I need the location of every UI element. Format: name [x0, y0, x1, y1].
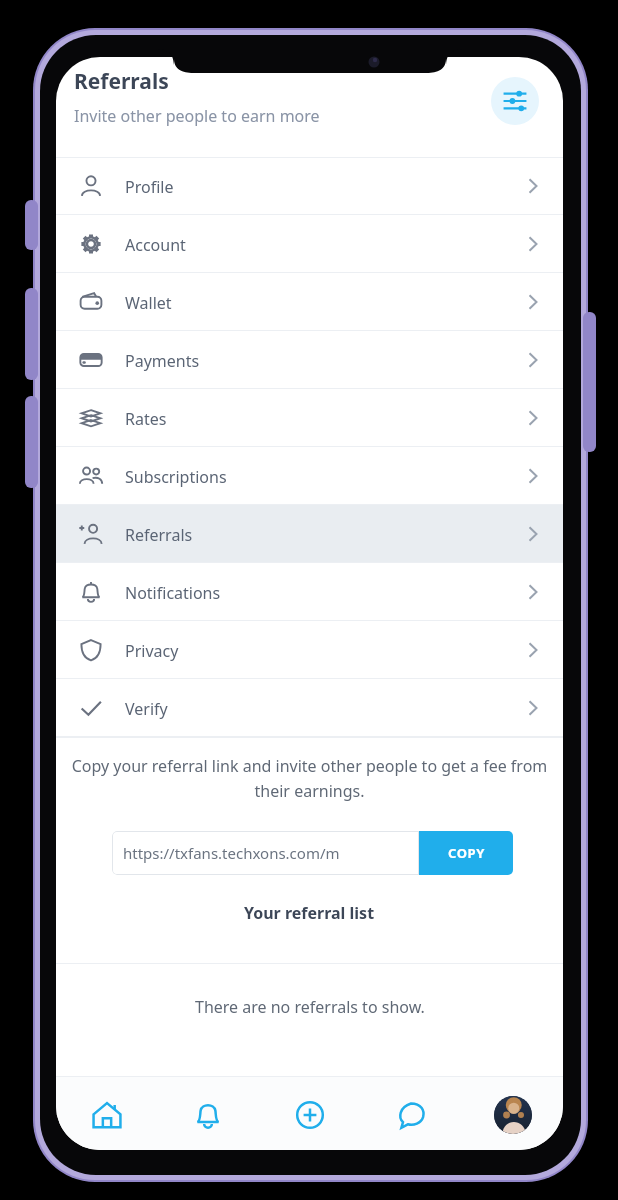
button[interactable]: Profile [56, 157, 563, 215]
button[interactable]: Referrals [56, 505, 563, 563]
staticText: Payments [125, 350, 200, 372]
staticText: Subscriptions [125, 466, 227, 488]
staticText: Referrals [74, 67, 169, 96]
staticText: Copy your referral link and invite other… [68, 755, 551, 801]
button[interactable]: https://txfans.techxons.com/m [112, 831, 419, 875]
staticText: Privacy [125, 640, 179, 662]
button[interactable]: Home [56, 1082, 157, 1148]
button[interactable]: Account [56, 215, 563, 273]
button[interactable]: Profile [462, 1082, 563, 1148]
staticText: https://txfans.techxons.com/m [123, 843, 340, 863]
button[interactable]: Filter settings [491, 77, 539, 125]
button[interactable]: Subscriptions [56, 447, 563, 505]
button[interactable]: Create [259, 1082, 360, 1148]
staticText: Invite other people to earn more [74, 105, 320, 127]
button[interactable]: Notifications [157, 1082, 258, 1148]
button[interactable]: Payments [56, 331, 563, 389]
button[interactable]: Verify [56, 679, 563, 737]
staticText: There are no referrals to show. [195, 996, 425, 1018]
button[interactable]: Privacy [56, 621, 563, 679]
button[interactable]: Messages [360, 1082, 461, 1148]
button[interactable]: Rates [56, 389, 563, 447]
staticText: Profile [125, 176, 174, 198]
button[interactable]: Notifications [56, 563, 563, 621]
staticText: Rates [125, 408, 167, 430]
staticText: Referrals [125, 524, 193, 546]
button[interactable]: Wallet [56, 273, 563, 331]
staticText: Wallet [125, 292, 172, 314]
staticText: Verify [125, 698, 168, 720]
button[interactable]: COPY [419, 831, 513, 875]
staticText: Your referral list [244, 902, 375, 924]
staticText: COPY [448, 844, 485, 862]
staticText: Notifications [125, 582, 221, 604]
staticText: Account [125, 234, 186, 256]
